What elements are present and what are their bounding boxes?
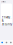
button[interactable]: Tab [9,40,13,45]
staticText: Settings [1,1,6,3]
button[interactable]: Profile [1,3,12,18]
button[interactable]: Tab [0,40,4,45]
button[interactable]: Tab [4,40,9,45]
staticText: Privacy & Security [2,15,12,26]
button[interactable]: Privacy & Security [1,19,12,23]
